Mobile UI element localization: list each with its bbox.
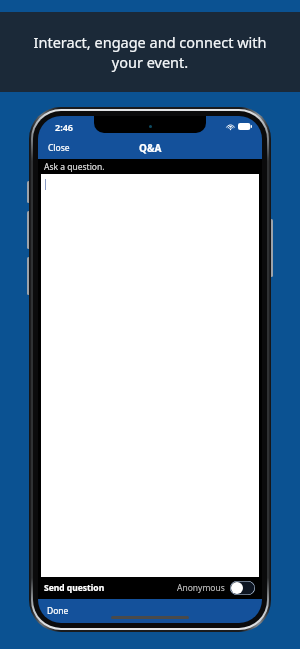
button[interactable]: Anonymous — [177, 577, 262, 599]
staticText: Done — [47, 605, 69, 617]
staticText: Interact, engage and connect with your e… — [18, 32, 282, 72]
other: Anonymous toggle — [230, 581, 255, 595]
staticText: Send question — [44, 582, 105, 594]
staticText: Ask a question. — [44, 161, 105, 173]
button[interactable]: Send question — [38, 577, 111, 599]
button[interactable]: Close — [38, 137, 80, 159]
staticText: Q&A — [139, 141, 162, 155]
staticText: Anonymous — [177, 582, 225, 594]
button[interactable]: Done — [38, 599, 78, 623]
staticText: Close — [48, 142, 70, 154]
staticText: 2:46 — [55, 121, 73, 133]
